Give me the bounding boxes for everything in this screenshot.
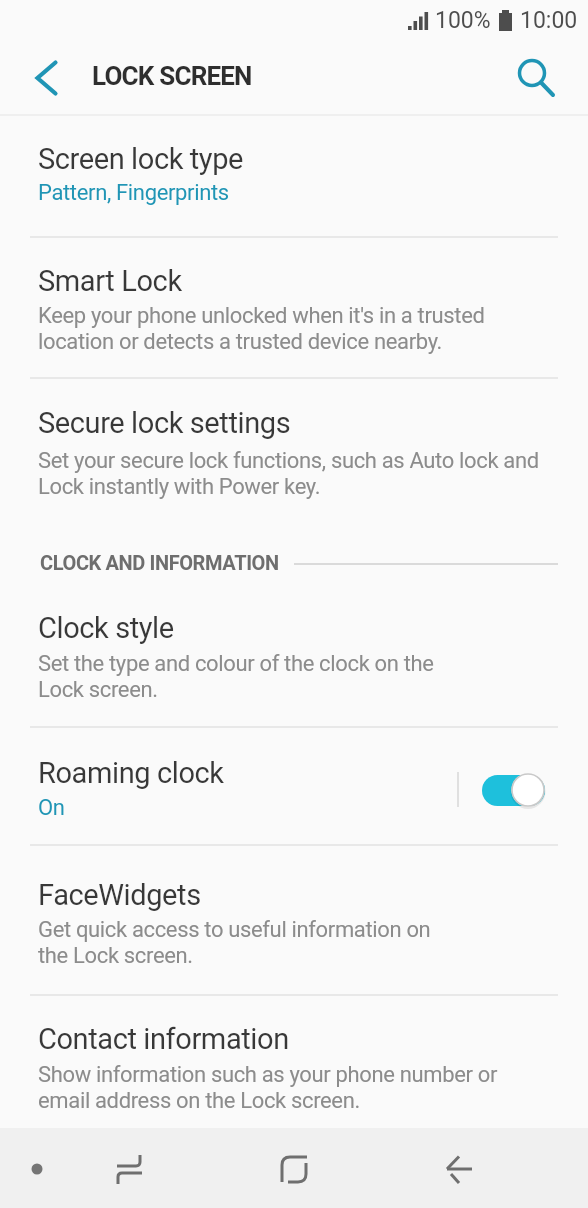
staticText: Screen lock type (38, 142, 244, 176)
staticText: Keep your phone unlocked when it's in a … (38, 303, 485, 354)
staticText: Roaming clock (38, 756, 224, 790)
button[interactable] (262, 1136, 326, 1200)
staticText: Smart Lock (38, 264, 182, 298)
staticText: 10:00 (520, 7, 578, 34)
staticText: On (38, 795, 65, 821)
button[interactable] (13, 1145, 61, 1193)
button[interactable]: Contact information (0, 995, 588, 1128)
staticText: Set the type and colour of the clock on … (38, 651, 434, 702)
staticText: CLOCK AND INFORMATION (40, 551, 279, 574)
staticText: 100% (435, 7, 491, 34)
staticText: Clock style (38, 611, 174, 645)
button[interactable] (98, 1137, 162, 1201)
button[interactable] (427, 1137, 491, 1201)
button[interactable]: Clock style (0, 600, 588, 727)
button[interactable]: Roaming clock (0, 727, 588, 845)
button[interactable] (504, 46, 568, 110)
staticText: Pattern, Fingerprints (38, 180, 229, 206)
button[interactable]: Secure lock settings (0, 378, 588, 520)
staticText: Set your secure lock functions, such as … (38, 448, 539, 499)
staticText: LOCK SCREEN (92, 61, 252, 91)
button[interactable] (482, 775, 545, 806)
staticText: Secure lock settings (38, 406, 291, 440)
staticText: FaceWidgets (38, 878, 201, 912)
button[interactable] (14, 46, 78, 110)
button[interactable]: FaceWidgets (0, 845, 588, 995)
staticText: Contact information (38, 1022, 289, 1056)
staticText: Get quick access to useful information o… (38, 917, 431, 968)
staticText: Show information such as your phone numb… (38, 1062, 498, 1113)
button[interactable]: Smart Lock (0, 237, 588, 378)
button[interactable]: Screen lock type (0, 116, 588, 237)
